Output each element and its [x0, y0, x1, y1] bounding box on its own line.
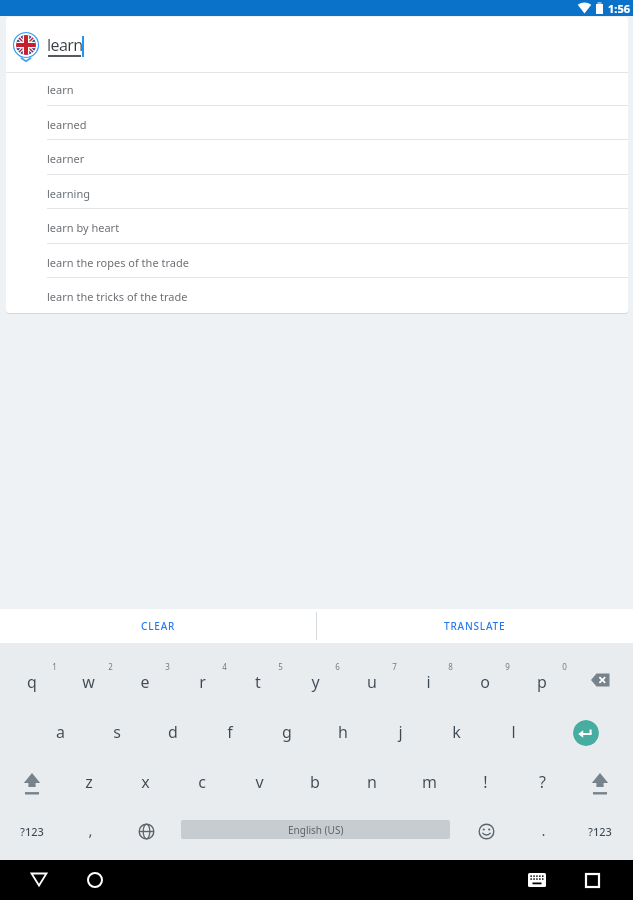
button[interactable]	[30, 872, 48, 887]
button[interactable]: u	[358, 670, 386, 694]
staticText: p	[537, 671, 547, 693]
staticText: learn the tricks of the trade	[47, 289, 188, 304]
staticText: CLEAR	[141, 619, 176, 633]
staticText: y	[311, 671, 320, 693]
button[interactable]: c	[188, 770, 216, 794]
staticText: 9	[505, 661, 510, 672]
button[interactable]: learn	[47, 34, 107, 57]
button[interactable]: r	[188, 670, 216, 694]
button[interactable]: h	[329, 720, 357, 744]
staticText: 4	[222, 661, 227, 672]
staticText: learner	[47, 151, 85, 166]
button[interactable]: d	[159, 720, 187, 744]
button[interactable]: ?123	[14, 820, 50, 842]
button[interactable]: i	[414, 670, 442, 694]
staticText: ,	[88, 820, 93, 840]
button[interactable]: learner	[6, 141, 628, 175]
staticText: i	[426, 671, 431, 693]
button[interactable]: ,	[80, 818, 100, 842]
button[interactable]: p	[528, 670, 556, 694]
staticText: q	[27, 671, 37, 693]
staticText: a	[56, 721, 65, 743]
staticText: d	[168, 721, 178, 743]
staticText: 1	[52, 661, 57, 672]
button[interactable]: learn the tricks of the trade	[6, 279, 628, 313]
button[interactable]: learn	[6, 72, 628, 106]
button[interactable]: learning	[6, 176, 628, 210]
staticText: 6	[335, 661, 340, 672]
staticText: v	[255, 771, 264, 793]
staticText: e	[140, 671, 150, 693]
button[interactable]	[591, 673, 610, 687]
button[interactable]: ?	[528, 770, 556, 794]
staticText: learn	[47, 82, 74, 97]
staticText: TRANSLATE	[444, 619, 506, 633]
button[interactable]: f	[216, 720, 244, 744]
button[interactable]: s	[103, 720, 131, 744]
staticText: w	[82, 671, 95, 693]
button[interactable]: q	[18, 670, 46, 694]
staticText: f	[227, 721, 233, 743]
button[interactable]: b	[301, 770, 329, 794]
button[interactable]: y	[301, 670, 329, 694]
button[interactable]	[573, 720, 599, 746]
staticText: 8	[448, 661, 453, 672]
button[interactable]: o	[471, 670, 499, 694]
button[interactable]: m	[415, 770, 443, 794]
staticText: j	[398, 721, 403, 743]
staticText: t	[255, 671, 261, 693]
staticText: u	[367, 671, 377, 693]
staticText: 7	[392, 661, 397, 672]
button[interactable]	[23, 773, 41, 795]
button[interactable]: TRANSLATE	[317, 609, 633, 643]
button[interactable]: CLEAR	[0, 609, 316, 643]
button[interactable]: l	[499, 720, 527, 744]
button[interactable]: !	[471, 770, 499, 794]
staticText: x	[141, 771, 150, 793]
staticText: .	[541, 820, 546, 840]
button[interactable]: a	[46, 720, 74, 744]
button[interactable]: z	[75, 770, 103, 794]
staticText: ?123	[588, 824, 612, 839]
staticText: learning	[47, 186, 90, 201]
button[interactable]	[478, 823, 495, 840]
button[interactable]	[585, 873, 600, 888]
button[interactable]: v	[245, 770, 273, 794]
button[interactable]: English (US)	[181, 820, 450, 839]
staticText: g	[282, 721, 292, 743]
button[interactable]: n	[358, 770, 386, 794]
staticText: !	[483, 771, 488, 793]
staticText: r	[199, 671, 206, 693]
button[interactable]: e	[131, 670, 159, 694]
button[interactable]	[591, 773, 609, 795]
button[interactable]: ?123	[582, 820, 618, 842]
staticText: ?	[539, 771, 546, 793]
button[interactable]: x	[131, 770, 159, 794]
staticText: m	[422, 771, 437, 793]
button[interactable]: j	[386, 720, 414, 744]
button[interactable]: w	[74, 670, 102, 694]
staticText: ?123	[20, 824, 44, 839]
staticText: 3	[165, 661, 170, 672]
staticText: n	[367, 771, 377, 793]
staticText: learned	[47, 117, 87, 132]
button[interactable]: learn by heart	[6, 210, 628, 244]
staticText: learn	[47, 34, 83, 56]
staticText: learn by heart	[47, 220, 120, 235]
staticText: c	[198, 771, 206, 793]
staticText: b	[310, 771, 320, 793]
staticText: 2	[108, 661, 113, 672]
button[interactable]: t	[244, 670, 272, 694]
button[interactable]	[87, 872, 103, 888]
button[interactable]	[12, 30, 40, 64]
button[interactable]: learned	[6, 107, 628, 141]
staticText: learn the ropes of the trade	[47, 255, 189, 270]
button[interactable]: .	[533, 818, 553, 842]
button[interactable]	[138, 823, 155, 840]
button[interactable]: k	[442, 720, 470, 744]
button[interactable]: g	[273, 720, 301, 744]
button[interactable]: learn the ropes of the trade	[6, 245, 628, 279]
staticText: 0	[562, 661, 567, 672]
staticText: 5	[278, 661, 283, 672]
button[interactable]	[528, 873, 546, 887]
